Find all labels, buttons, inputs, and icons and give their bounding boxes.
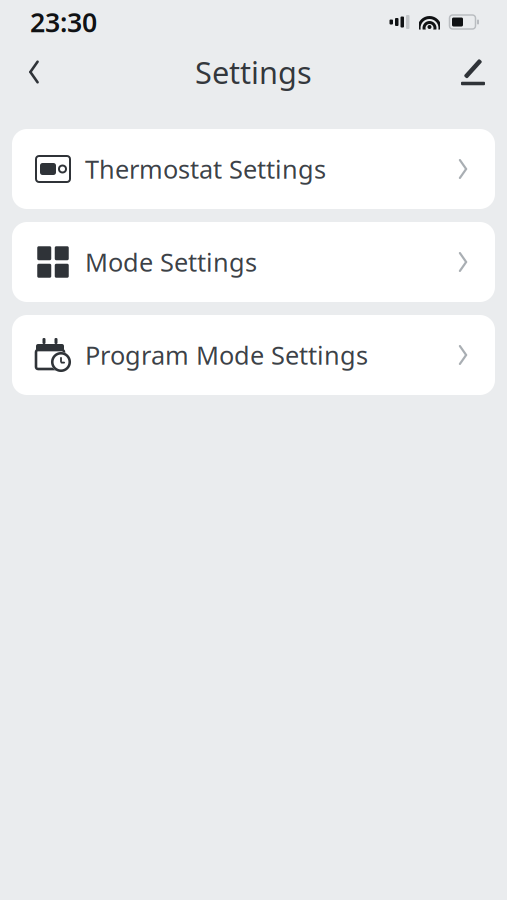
- staticText: Thermostat Settings: [85, 152, 326, 186]
- button[interactable]: Mode Settings: [12, 222, 495, 302]
- staticText: Program Mode Settings: [85, 338, 368, 372]
- button[interactable]: Back: [8, 46, 60, 98]
- staticText: 23:30: [30, 4, 97, 40]
- button[interactable]: Thermostat Settings: [12, 129, 495, 209]
- button[interactable]: Edit: [447, 46, 499, 98]
- staticText: Mode Settings: [85, 245, 257, 279]
- button[interactable]: Program Mode Settings: [12, 315, 495, 395]
- staticText: Settings: [195, 52, 312, 92]
